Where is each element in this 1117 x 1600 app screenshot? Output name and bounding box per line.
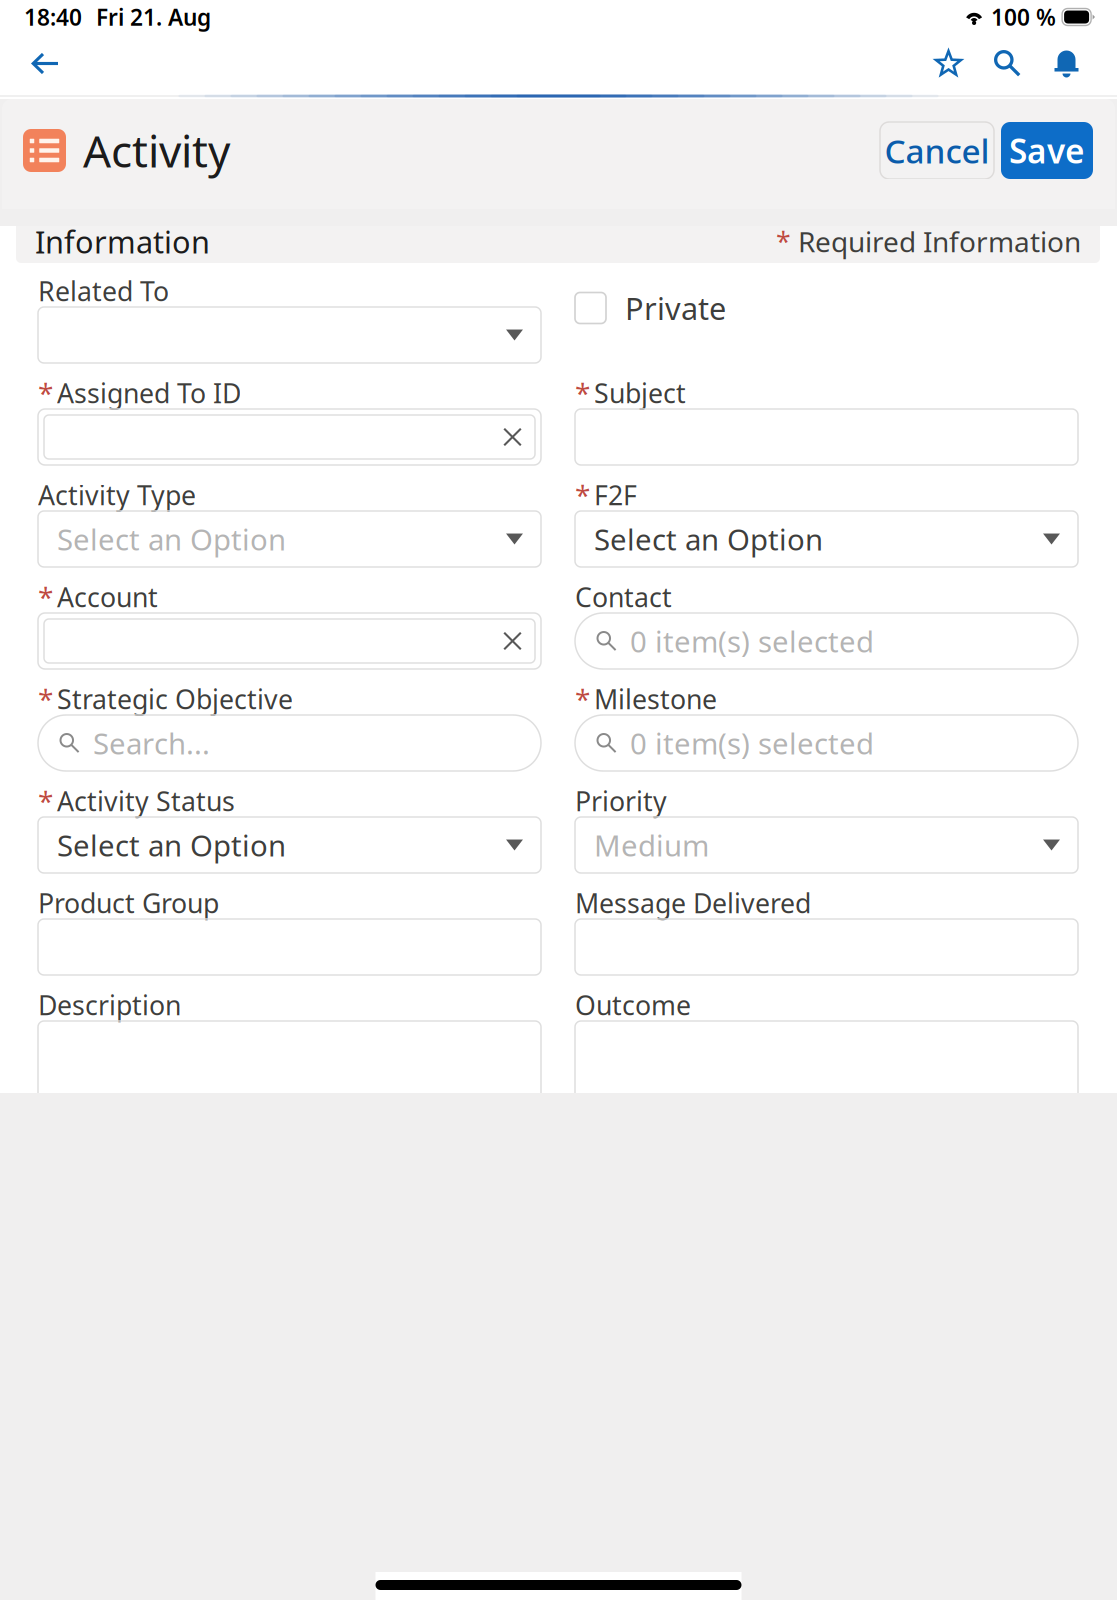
staticText: * [575, 476, 590, 514]
staticText: * [38, 680, 53, 718]
staticText: Cancel [884, 128, 989, 173]
button[interactable]: Favorite [919, 34, 978, 92]
staticText: Description [38, 987, 181, 1023]
staticText: Private [625, 288, 726, 328]
button[interactable]: Select an Option [575, 511, 1078, 567]
staticText: Contact [575, 579, 672, 615]
button[interactable]: Select an Option [38, 817, 541, 873]
staticText: Select an Option [57, 519, 286, 558]
button[interactable]: 0 item(s) selected [575, 715, 1078, 771]
staticText: * [38, 578, 53, 616]
staticText: 100 % [991, 2, 1056, 32]
button[interactable]: Medium [575, 817, 1078, 873]
staticText: Information [35, 221, 210, 262]
button[interactable]: Notifications [1037, 34, 1096, 92]
button[interactable]: Save [1001, 122, 1093, 179]
staticText: Message Delivered [575, 885, 811, 921]
staticText: Assigned To ID [57, 375, 241, 411]
staticText: Product Group [38, 885, 219, 921]
button[interactable]: 0 item(s) selected [575, 613, 1078, 669]
staticText: * [575, 680, 590, 718]
staticText: 0 item(s) selected [630, 723, 874, 762]
staticText: Required Information [798, 223, 1081, 260]
staticText: Subject [594, 375, 686, 411]
staticText: Outcome [575, 987, 691, 1023]
staticText: Select an Option [594, 519, 823, 558]
button[interactable]: Cancel [880, 122, 994, 179]
button[interactable]: Search [978, 34, 1037, 92]
staticText: Activity [83, 121, 230, 180]
staticText: Activity Status [57, 783, 235, 819]
staticText: Fri 21. Aug [96, 2, 211, 32]
button[interactable]: Back [17, 35, 73, 91]
button[interactable]: Private [575, 292, 606, 323]
staticText: Medium [594, 825, 709, 864]
staticText: Account [57, 579, 158, 615]
button[interactable] [38, 307, 541, 363]
button[interactable]: Search... [38, 715, 541, 771]
staticText: * [38, 782, 53, 820]
staticText: 0 item(s) selected [630, 621, 874, 660]
staticText: F2F [594, 477, 637, 513]
staticText: Activity Type [38, 477, 196, 513]
button[interactable] [38, 613, 541, 669]
staticText: * [776, 224, 791, 259]
staticText: Search... [93, 723, 210, 762]
staticText: Strategic Objective [57, 681, 293, 717]
staticText: Related To [38, 273, 169, 309]
staticText: Milestone [594, 681, 717, 717]
staticText: Priority [575, 783, 667, 819]
button[interactable] [38, 409, 541, 465]
staticText: Save [1009, 128, 1085, 173]
staticText: 18:40 [24, 2, 82, 32]
staticText: * [575, 374, 590, 412]
staticText: * [38, 374, 53, 412]
staticText: Select an Option [57, 825, 286, 864]
button[interactable]: Select an Option [38, 511, 541, 567]
